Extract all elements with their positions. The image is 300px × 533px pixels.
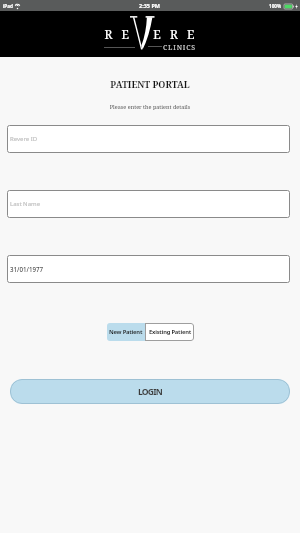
staticText: R E E R E [1, 26, 300, 42]
staticText: Existing Patient [149, 328, 191, 336]
staticText: iPad [3, 3, 13, 9]
button[interactable]: New Patient [107, 323, 145, 341]
staticText: PATIENT PORTAL [0, 78, 300, 90]
staticText: LOGIN [138, 386, 162, 398]
staticText: CLINICS [163, 43, 196, 53]
button[interactable]: Existing Patient [145, 323, 194, 341]
staticText: Last Name [10, 200, 41, 208]
button[interactable]: Revere ID [7, 125, 290, 153]
button[interactable]: 31/01/1977 [7, 255, 290, 283]
button[interactable]: Last Name [7, 190, 290, 218]
staticText: New Patient [109, 328, 143, 336]
button[interactable]: LOGIN [10, 379, 290, 404]
staticText: 100% [269, 3, 282, 9]
staticText: Revere ID [10, 135, 38, 143]
staticText: 31/01/1977 [10, 265, 44, 273]
staticText: Please enter the patient details [0, 103, 300, 110]
staticText: 2:35 PM [139, 2, 161, 9]
other: Wi-Fi [15, 4, 20, 9]
